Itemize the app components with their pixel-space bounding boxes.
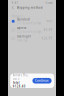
staticText: Options (11, 14, 22, 18)
staticText: $24.99 (41, 37, 52, 40)
staticText: Standard (17, 18, 30, 21)
staticText: Arrives Thu, Oct 3 (13, 73, 29, 80)
button[interactable]: Standard (8, 17, 56, 26)
staticText: Continue (35, 79, 49, 82)
staticText: Free (46, 19, 52, 23)
staticText: ◗ (48, 1, 49, 4)
button[interactable]: Express (8, 26, 56, 34)
staticText: $9.99 (43, 28, 52, 32)
button[interactable]: Continue (32, 78, 52, 84)
staticText: ıl (46, 1, 48, 5)
staticText: Total $128.40 (13, 81, 26, 88)
staticText: Shipping method (17, 6, 43, 9)
staticText: next day (17, 39, 27, 42)
staticText: Overnight (17, 35, 31, 38)
button[interactable]: Back (11, 5, 15, 10)
staticText: 9:41 (11, 1, 18, 5)
staticText: 2–3 business days (17, 30, 41, 34)
button[interactable]: Overnight (8, 34, 56, 43)
staticText: Express (17, 26, 26, 30)
staticText: 5–7 business days (17, 21, 41, 25)
